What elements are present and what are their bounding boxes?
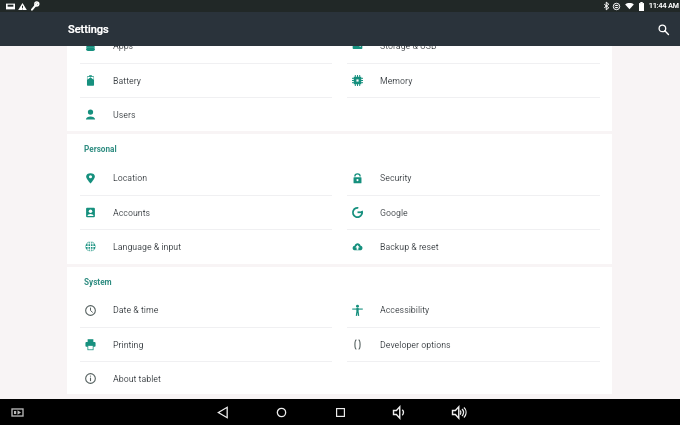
staticText: Accounts bbox=[113, 208, 151, 218]
button[interactable]: Home bbox=[268, 399, 294, 425]
button[interactable]: IME switcher bbox=[8, 403, 26, 421]
staticText: Backup & reset bbox=[380, 242, 439, 252]
button[interactable]: Accounts bbox=[67, 196, 334, 229]
staticText: Personal bbox=[84, 144, 117, 154]
staticText: Settings bbox=[68, 23, 109, 36]
button[interactable]: Recents bbox=[327, 399, 353, 425]
button[interactable]: Memory bbox=[334, 64, 612, 97]
button[interactable]: Volume up bbox=[445, 399, 471, 425]
button[interactable]: Back bbox=[209, 399, 235, 425]
staticText: Storage & USB bbox=[380, 41, 437, 51]
button[interactable]: Location bbox=[67, 161, 334, 195]
staticText: Users bbox=[113, 110, 136, 120]
staticText: Memory bbox=[380, 76, 413, 86]
staticText: 11:44 AM bbox=[649, 2, 679, 10]
button[interactable]: Developer options bbox=[334, 328, 612, 361]
staticText: Developer options bbox=[380, 340, 451, 350]
staticText: Apps bbox=[113, 41, 134, 51]
button[interactable]: Date & time bbox=[67, 293, 334, 327]
staticText: Google bbox=[380, 208, 408, 218]
button[interactable]: Battery bbox=[67, 64, 334, 97]
staticText: Battery bbox=[113, 76, 141, 86]
button[interactable]: Printing bbox=[67, 328, 334, 361]
staticText: Language & input bbox=[113, 242, 182, 252]
button[interactable]: Users bbox=[67, 98, 334, 131]
button[interactable]: Backup & reset bbox=[334, 230, 612, 263]
staticText: About tablet bbox=[113, 374, 161, 384]
button[interactable]: Volume down bbox=[386, 399, 412, 425]
staticText: Printing bbox=[113, 340, 144, 350]
button[interactable]: Security bbox=[334, 161, 612, 195]
button[interactable]: About tablet bbox=[67, 362, 334, 395]
button[interactable]: Storage & USB bbox=[334, 29, 612, 63]
button[interactable]: Google bbox=[334, 196, 612, 229]
staticText: Security bbox=[380, 173, 412, 183]
button[interactable]: Search bbox=[650, 16, 676, 42]
button[interactable]: Language & input bbox=[67, 230, 334, 263]
staticText: System bbox=[84, 277, 112, 287]
staticText: Location bbox=[113, 173, 148, 183]
staticText: Date & time bbox=[113, 305, 159, 315]
button[interactable]: Apps bbox=[67, 29, 334, 63]
button[interactable]: Accessibility bbox=[334, 293, 612, 327]
staticText: Accessibility bbox=[380, 305, 430, 315]
